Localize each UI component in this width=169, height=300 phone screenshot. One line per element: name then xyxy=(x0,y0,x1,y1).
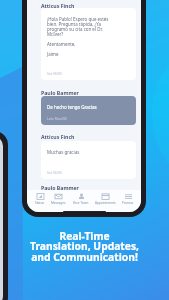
button[interactable]: ¡Hola Pablo! Espero que estés bien. Preg… xyxy=(41,8,136,80)
staticText: Appointments xyxy=(95,201,116,205)
button[interactable]: Muchas gracias xyxy=(41,141,136,179)
staticText: Late Mon/05 xyxy=(47,116,68,121)
staticText: Sat 06/05 xyxy=(47,170,62,175)
button[interactable]: Process xyxy=(122,193,134,205)
staticText: ¡Hola Pablo! Espero que estés bien. Preg… xyxy=(47,16,109,57)
button[interactable]: De hecho tengo Gracias xyxy=(41,96,136,125)
staticText: Muchas gracias xyxy=(47,149,80,155)
staticText: Sat 06/05 xyxy=(47,71,62,76)
button[interactable]: Appointments xyxy=(95,193,116,205)
staticText: Status xyxy=(35,201,45,205)
staticText: Your Team xyxy=(73,201,89,205)
staticText: Process xyxy=(122,201,134,205)
button[interactable]: Messages xyxy=(51,193,66,205)
staticText: De hecho tengo Gracias xyxy=(47,104,97,110)
staticText: Real-Time Translation, Updates, and Comm… xyxy=(0,229,169,264)
button[interactable]: Status xyxy=(35,193,45,205)
staticText: Paulo Bammer xyxy=(41,89,79,96)
staticText: Atticus Finch xyxy=(41,133,75,140)
staticText: Atticus Finch xyxy=(41,2,75,9)
staticText: Messages xyxy=(51,201,66,205)
button[interactable]: Your Team xyxy=(73,193,89,205)
staticText: Paulo Bammer xyxy=(41,184,79,191)
